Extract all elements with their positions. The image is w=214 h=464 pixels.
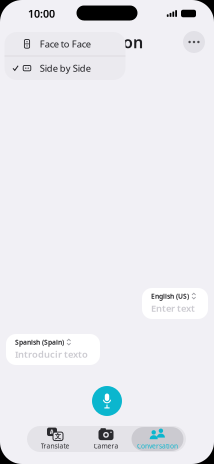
button[interactable]: Conversation [131, 427, 183, 451]
staticText: Face to Face [40, 38, 91, 50]
staticText: Conversation [40, 31, 143, 53]
button[interactable]: More options [178, 27, 210, 57]
button[interactable]: Spanish (Spain) [6, 334, 100, 365]
button[interactable]: Side by Side [4, 56, 125, 80]
button[interactable]: English (US) [142, 288, 208, 319]
staticText: Translate [40, 442, 69, 450]
staticText: 文 [54, 432, 61, 440]
staticText: Spanish (Spain) [15, 338, 64, 346]
staticText: A [49, 427, 54, 436]
staticText: English (US) [151, 292, 189, 300]
button[interactable]: A [29, 427, 80, 451]
button[interactable]: Record [87, 381, 127, 421]
button[interactable]: Face to Face [4, 32, 125, 56]
staticText: Camera [93, 442, 118, 450]
staticText: 10:00 [28, 6, 55, 21]
staticText: Conversation [137, 442, 178, 450]
staticText: Side by Side [40, 62, 91, 74]
staticText: Enter text [151, 302, 195, 314]
staticText: Introducir texto [15, 348, 88, 360]
button[interactable]: Camera [80, 427, 131, 451]
